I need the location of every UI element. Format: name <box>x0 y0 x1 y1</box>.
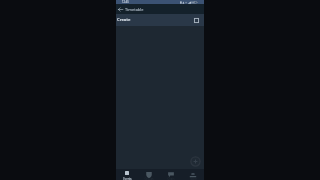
staticText: Events <box>123 177 132 180</box>
button[interactable]: More <box>182 169 204 180</box>
button[interactable]: Layout options <box>192 16 201 25</box>
staticText: 12:45 <box>122 0 129 4</box>
button[interactable]: Create new <box>190 156 201 167</box>
button[interactable]: Events <box>116 169 138 180</box>
button[interactable]: Chats <box>160 169 182 180</box>
staticText: More <box>190 177 197 180</box>
staticText: Groups <box>144 177 154 180</box>
button[interactable]: Navigate up <box>116 4 125 14</box>
button[interactable]: Groups <box>138 169 160 180</box>
staticText: Timetable <box>125 7 144 12</box>
staticText: Create <box>117 17 131 23</box>
